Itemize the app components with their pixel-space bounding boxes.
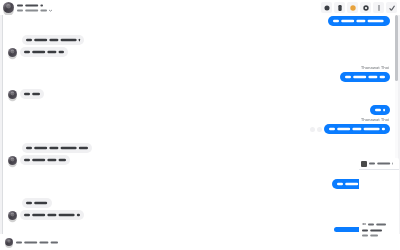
staticText: Thanawat Thoi xyxy=(361,220,390,225)
button[interactable] xyxy=(328,16,390,26)
button[interactable]: Done xyxy=(386,2,397,13)
button[interactable]: Highlight xyxy=(347,2,358,13)
staticText: Thanawat Thoi xyxy=(361,65,390,70)
button[interactable] xyxy=(395,15,398,81)
button[interactable] xyxy=(16,241,58,244)
button[interactable]: More options xyxy=(373,2,384,13)
button[interactable] xyxy=(20,89,44,99)
button[interactable]: Reply xyxy=(317,127,322,132)
button[interactable] xyxy=(334,227,390,232)
button[interactable]: Settings xyxy=(360,2,371,13)
button[interactable] xyxy=(359,158,399,240)
button[interactable] xyxy=(22,143,92,153)
button[interactable] xyxy=(370,105,390,115)
button[interactable] xyxy=(3,2,52,13)
button[interactable] xyxy=(20,155,70,165)
staticText: Thanawat Thoi xyxy=(361,117,390,122)
button[interactable] xyxy=(332,179,390,189)
button[interactable] xyxy=(340,72,390,82)
button[interactable] xyxy=(22,198,52,208)
button[interactable] xyxy=(20,210,84,220)
button[interactable]: React xyxy=(310,127,315,132)
button[interactable] xyxy=(20,47,68,57)
button[interactable]: Camera xyxy=(321,2,332,13)
button[interactable] xyxy=(22,35,84,45)
button[interactable] xyxy=(324,124,390,134)
button[interactable]: Delete xyxy=(334,2,345,13)
